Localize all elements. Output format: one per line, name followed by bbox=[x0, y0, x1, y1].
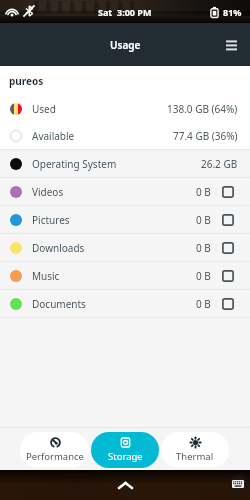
staticText: 77.4 GB (36%) bbox=[173, 129, 238, 143]
staticText: 0 B bbox=[196, 213, 211, 227]
button[interactable]: Home bbox=[113, 473, 137, 497]
button[interactable]: Storage bbox=[91, 432, 159, 468]
staticText: Music bbox=[32, 269, 60, 283]
button[interactable]: Select Music bbox=[222, 270, 234, 282]
staticText: 81% bbox=[223, 6, 242, 18]
staticText: 0 B bbox=[196, 269, 211, 283]
staticText: Performance bbox=[26, 450, 84, 463]
staticText: 3:00 PM bbox=[117, 6, 152, 18]
button[interactable]: Music bbox=[0, 262, 250, 289]
button[interactable]: Select Downloads bbox=[222, 242, 234, 254]
staticText: 26.2 GB bbox=[201, 157, 238, 171]
staticText: Videos bbox=[32, 185, 64, 199]
button[interactable]: Select Pictures bbox=[222, 214, 234, 226]
staticText: pureos bbox=[9, 74, 44, 88]
staticText: 0 B bbox=[196, 241, 211, 255]
button[interactable]: Videos bbox=[0, 178, 250, 205]
button[interactable]: Documents bbox=[0, 290, 250, 317]
staticText: Usage bbox=[110, 38, 141, 52]
staticText: Used bbox=[32, 102, 56, 116]
staticText: Operating System bbox=[32, 157, 117, 171]
staticText: 0 B bbox=[196, 297, 211, 311]
staticText: Downloads bbox=[32, 241, 85, 255]
button[interactable]: Operating System bbox=[0, 150, 250, 177]
staticText: Storage bbox=[108, 450, 143, 463]
button[interactable]: Used bbox=[0, 95, 250, 122]
staticText: 138.0 GB (64%) bbox=[167, 102, 238, 116]
staticText: 0 B bbox=[196, 185, 211, 199]
button[interactable]: Available bbox=[0, 122, 250, 149]
button[interactable]: Select Videos bbox=[222, 186, 234, 198]
button[interactable]: Performance bbox=[20, 432, 89, 468]
staticText: Available bbox=[32, 129, 75, 143]
staticText: Sat bbox=[98, 6, 113, 18]
staticText: Pictures bbox=[32, 213, 70, 227]
button[interactable]: Thermal bbox=[161, 432, 229, 468]
staticText: Thermal bbox=[176, 450, 214, 463]
button[interactable]: Select Documents bbox=[222, 298, 234, 310]
button[interactable]: Downloads bbox=[0, 234, 250, 261]
button[interactable]: Menu bbox=[219, 33, 243, 57]
staticText: Documents bbox=[32, 297, 86, 311]
button[interactable]: Keyboard bbox=[229, 475, 247, 493]
button[interactable]: Pictures bbox=[0, 206, 250, 233]
